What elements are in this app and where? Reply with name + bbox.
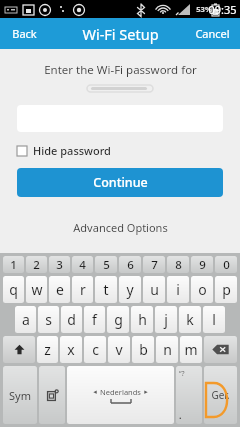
staticText: s: [45, 310, 52, 329]
button[interactable]: 8: [167, 256, 189, 273]
staticText: 1: [10, 257, 17, 273]
button[interactable]: b: [132, 336, 154, 363]
staticText: 3: [56, 257, 63, 273]
staticText: 7: [151, 257, 158, 273]
button[interactable]: g: [107, 306, 129, 333]
button[interactable]: f: [84, 306, 105, 333]
staticText: Cancel: [195, 26, 230, 41]
button[interactable]: 5: [95, 256, 117, 273]
button[interactable]: k: [179, 306, 201, 333]
staticText: 4: [79, 257, 86, 273]
staticText: q: [9, 280, 18, 299]
staticText: k: [186, 310, 194, 329]
staticText: c: [92, 340, 99, 359]
staticText: t: [103, 280, 109, 299]
button[interactable]: 2: [26, 256, 47, 273]
staticText: 6: [127, 257, 134, 273]
staticText: “?: [179, 369, 199, 379]
staticText: h: [138, 310, 147, 329]
button[interactable]: Ger.: [204, 366, 237, 424]
staticText: e: [56, 280, 64, 299]
staticText: w: [31, 280, 43, 299]
button[interactable]: Punctuation: [176, 366, 202, 424]
staticText: 0: [223, 257, 230, 273]
staticText: 53%: [196, 4, 212, 14]
staticText: n: [163, 340, 172, 359]
staticText: i: [176, 280, 180, 299]
staticText: l: [212, 310, 216, 329]
staticText: 2: [33, 257, 40, 273]
button[interactable]: q: [3, 276, 24, 303]
staticText: p: [222, 280, 231, 299]
staticText: Advanced Options: [73, 220, 168, 235]
staticText: b: [139, 340, 148, 359]
button[interactable]: 1: [3, 256, 24, 273]
staticText: Sym: [9, 388, 31, 403]
button[interactable]: c: [84, 336, 106, 363]
staticText: Nederlands: [100, 387, 141, 397]
staticText: Hide password: [33, 143, 111, 158]
button[interactable]: p: [215, 276, 237, 303]
button[interactable]: a: [15, 306, 36, 333]
button[interactable]: y: [119, 276, 141, 303]
button[interactable]: Input method settings: [39, 366, 65, 424]
staticText: o: [198, 280, 207, 299]
button[interactable]: Cancel: [185, 20, 240, 47]
button[interactable]: n: [156, 336, 178, 363]
staticText: a: [22, 310, 30, 329]
staticText: r: [80, 280, 86, 299]
staticText: Ger.: [211, 388, 230, 402]
button[interactable]: i: [167, 276, 189, 303]
button[interactable]: 0: [215, 256, 237, 273]
staticText: .: [179, 409, 199, 421]
staticText: v: [115, 340, 123, 359]
button[interactable]: 7: [143, 256, 165, 273]
button[interactable]: 3: [49, 256, 70, 273]
button[interactable]: Continue: [17, 168, 223, 197]
button[interactable]: 4: [72, 256, 93, 273]
button[interactable]: e: [49, 276, 70, 303]
button[interactable]: z: [37, 336, 58, 363]
button[interactable]: j: [155, 306, 177, 333]
staticText: y: [126, 280, 134, 299]
button[interactable]: Advanced Options: [65, 217, 176, 238]
staticText: ◂: [93, 388, 97, 396]
staticText: u: [150, 280, 159, 299]
staticText: Enter the Wi-Fi password for: [44, 62, 197, 78]
staticText: Continue: [93, 174, 148, 191]
staticText: j: [164, 310, 168, 329]
button[interactable]: u: [143, 276, 165, 303]
button[interactable]: l: [203, 306, 225, 333]
button[interactable]: x: [60, 336, 82, 363]
staticText: d: [67, 310, 76, 329]
staticText: z: [44, 340, 51, 359]
staticText: 5: [103, 257, 110, 273]
staticText: x: [67, 340, 75, 359]
button[interactable]: 9: [191, 256, 213, 273]
button[interactable]: w: [26, 276, 47, 303]
button[interactable]: h: [131, 306, 153, 333]
button[interactable]: Hide password: [17, 141, 223, 160]
staticText: m: [184, 340, 198, 359]
staticText: 9: [199, 257, 206, 273]
button[interactable]: Backspace: [204, 336, 237, 363]
button[interactable]: s: [38, 306, 59, 333]
button[interactable]: m: [180, 336, 202, 363]
button[interactable]: 6: [119, 256, 141, 273]
staticText: 09:35: [208, 2, 237, 17]
button[interactable]: t: [95, 276, 117, 303]
button[interactable]: r: [72, 276, 93, 303]
staticText: g: [114, 310, 123, 329]
button[interactable]: Shift: [3, 336, 35, 363]
button[interactable]: Back: [0, 20, 49, 47]
button[interactable]: v: [108, 336, 130, 363]
button[interactable]: Sym: [3, 366, 37, 424]
button[interactable]: ◂: [67, 366, 174, 424]
staticText: f: [92, 310, 97, 329]
staticText: 8: [175, 257, 182, 273]
button[interactable]: o: [191, 276, 213, 303]
staticText: Back: [12, 26, 37, 41]
button[interactable]: d: [61, 306, 82, 333]
staticText: Wi-Fi Setup: [82, 24, 159, 44]
